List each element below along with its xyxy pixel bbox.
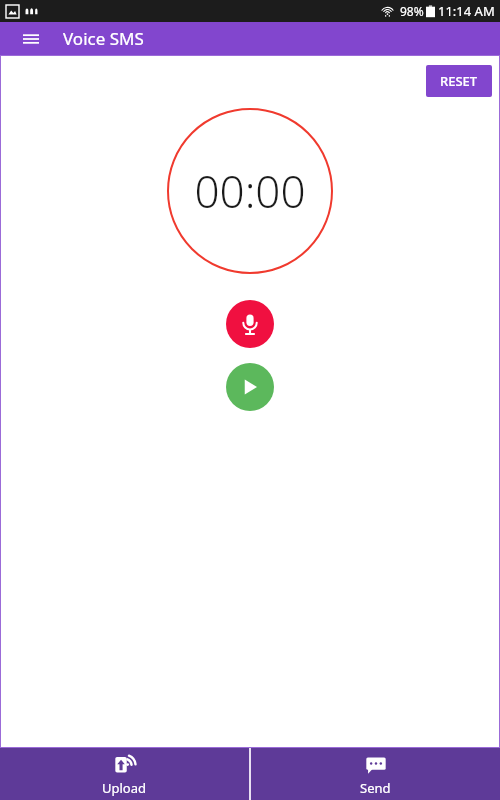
staticText: Send <box>360 779 391 797</box>
button[interactable]: RESET <box>426 65 492 97</box>
staticText: RESET <box>440 72 478 90</box>
button[interactable]: Play <box>226 363 274 411</box>
staticText: 98% <box>400 3 424 19</box>
staticText: Upload <box>102 779 147 797</box>
button[interactable]: Upload <box>0 748 249 800</box>
button[interactable]: Record <box>226 300 274 348</box>
button[interactable]: Open navigation menu <box>18 26 44 52</box>
staticText: Voice SMS <box>63 27 144 50</box>
staticText: 11:14 AM <box>438 2 495 20</box>
button[interactable]: Send <box>251 748 500 800</box>
staticText: 00:00 <box>194 161 306 221</box>
